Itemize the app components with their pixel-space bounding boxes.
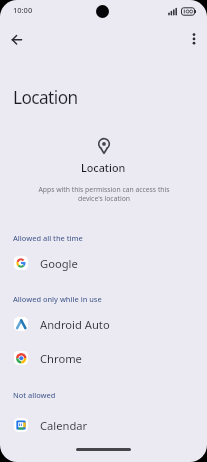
staticText: Apps with this permission can access thi… bbox=[38, 185, 170, 203]
button[interactable] bbox=[76, 448, 131, 451]
staticText: Android Auto bbox=[40, 317, 110, 332]
staticText: Allowed only while in use bbox=[13, 294, 102, 304]
button[interactable]: Google bbox=[0, 246, 207, 280]
staticText: Allowed all the time bbox=[13, 233, 83, 243]
staticText: 10:00 bbox=[13, 5, 33, 15]
staticText: Chrome bbox=[40, 351, 82, 366]
staticText: Calendar bbox=[40, 418, 88, 433]
button[interactable]: Chrome bbox=[0, 341, 207, 375]
staticText: Not allowed bbox=[13, 390, 56, 400]
button[interactable]: Android Auto bbox=[0, 307, 207, 341]
button[interactable] bbox=[184, 29, 204, 49]
staticText: Google bbox=[40, 256, 78, 271]
button[interactable] bbox=[6, 29, 28, 51]
staticText: Location bbox=[81, 160, 126, 175]
button[interactable]: Calendar bbox=[0, 408, 207, 442]
staticText: Location bbox=[13, 86, 78, 109]
